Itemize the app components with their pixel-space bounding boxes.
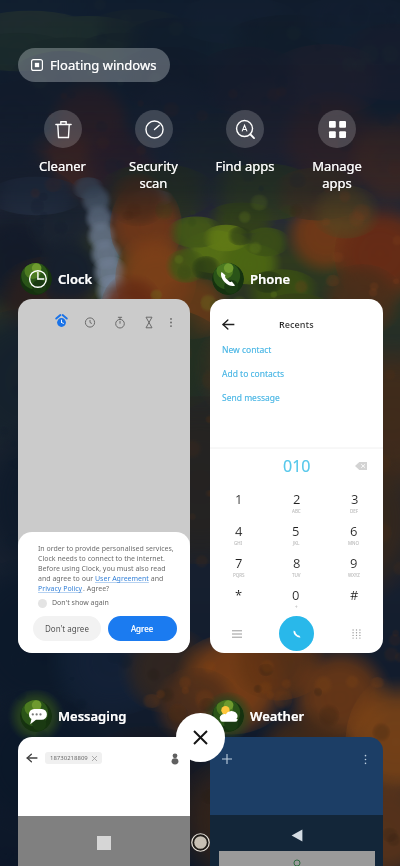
button[interactable]: Find apps [199, 110, 291, 175]
other: Back [222, 318, 235, 331]
button[interactable]: 6 [325, 518, 383, 550]
button[interactable]: 8 [267, 550, 325, 582]
staticText: TUV [292, 572, 301, 578]
button[interactable]: New contact [222, 338, 383, 362]
button[interactable]: Add to contacts [222, 362, 383, 386]
staticText: 1 [235, 490, 243, 508]
staticText: Clock needs to connect to the internet. [38, 554, 165, 564]
button[interactable]: Add city [210, 737, 383, 866]
staticText: 4 [235, 522, 243, 540]
staticText: Send message [222, 392, 280, 404]
staticText: Clock [58, 270, 93, 288]
staticText: Manage apps [312, 157, 362, 192]
other: Contacts [170, 753, 180, 763]
button[interactable]: Cleaner [17, 110, 108, 175]
staticText: PQRS [233, 572, 245, 578]
button[interactable]: Home [191, 833, 210, 852]
staticText: Floating windows [50, 56, 157, 74]
button[interactable]: Call [279, 616, 314, 651]
staticText: ABC [292, 508, 301, 514]
staticText: 5 [292, 522, 300, 540]
button[interactable]: Back [210, 299, 383, 653]
button[interactable]: Don't agree [33, 616, 101, 641]
staticText: 0 [292, 586, 300, 604]
other: Call log [232, 630, 242, 638]
staticText: * [235, 586, 243, 604]
staticText: Security scan [129, 157, 178, 192]
staticText: MNO [348, 540, 360, 546]
staticText: 3 [351, 490, 359, 508]
staticText: 6 [350, 522, 358, 540]
staticText: 8 [293, 554, 301, 572]
button[interactable]: # [325, 582, 383, 614]
button[interactable]: 4 [210, 518, 267, 550]
staticText: DEF [350, 508, 359, 514]
staticText: Cleaner [39, 157, 86, 175]
staticText: . Agree? [83, 584, 110, 594]
staticText: GHI [234, 540, 243, 546]
button[interactable]: 5 [267, 518, 325, 550]
staticText: Before using Clock, you must also read [38, 564, 166, 574]
staticText: Messaging [58, 707, 127, 725]
staticText: 7 [235, 554, 243, 572]
other: Back [26, 752, 38, 764]
other: More options [360, 754, 371, 765]
staticText: Phone [250, 270, 291, 288]
staticText: + [295, 604, 298, 610]
staticText: 2 [293, 490, 301, 508]
staticText: and agree to our [38, 574, 95, 584]
staticText: Weather [250, 707, 305, 725]
staticText: Agree [131, 623, 154, 634]
staticText: Don't agree [45, 623, 89, 634]
other: Back [291, 829, 303, 842]
button[interactable]: Don't show again [38, 598, 109, 608]
staticText: 010 [283, 455, 311, 477]
button[interactable]: 2 [267, 486, 325, 518]
button[interactable]: Back [18, 737, 190, 866]
button[interactable]: 9 [325, 550, 383, 582]
button[interactable]: Agree [108, 616, 177, 641]
button[interactable]: 1 [210, 486, 267, 518]
other: Add city [222, 754, 232, 764]
button[interactable]: Manage apps [291, 110, 383, 192]
button[interactable]: Clock [20, 263, 93, 295]
button[interactable]: * [210, 582, 267, 614]
staticText: In order to provide personalised service… [38, 544, 174, 554]
button[interactable]: 18730218809 [45, 752, 102, 764]
staticText: Add to contacts [222, 368, 285, 380]
staticText: Recents [279, 318, 314, 330]
staticText: Don't show again [52, 598, 109, 608]
staticText: Find apps [215, 157, 275, 175]
button[interactable]: Messaging [20, 700, 127, 732]
button[interactable]: 3 [325, 486, 383, 518]
button[interactable]: Phone [212, 263, 291, 295]
button[interactable]: Weather [212, 700, 305, 732]
staticText: New contact [222, 344, 272, 356]
staticText: 9 [350, 554, 358, 572]
button[interactable]: Security scan [108, 110, 199, 192]
staticText: Privacy Policy [38, 584, 83, 594]
button[interactable]: 0 [267, 582, 325, 614]
staticText: 18730218809 [50, 754, 88, 762]
button[interactable]: Send message [222, 386, 383, 410]
staticText: User Agreement [95, 574, 149, 584]
other: Backspace [355, 462, 367, 470]
button[interactable]: Floating windows [18, 48, 170, 82]
staticText: # [350, 586, 359, 604]
staticText: WXYZ [348, 572, 360, 578]
button[interactable]: Close all [176, 713, 225, 762]
staticText: and [149, 574, 164, 584]
button[interactable]: 7 [210, 550, 267, 582]
button[interactable]: In order to provide personalised service… [18, 299, 190, 653]
staticText: JKL [293, 540, 300, 546]
other: Dialpad [352, 629, 361, 639]
